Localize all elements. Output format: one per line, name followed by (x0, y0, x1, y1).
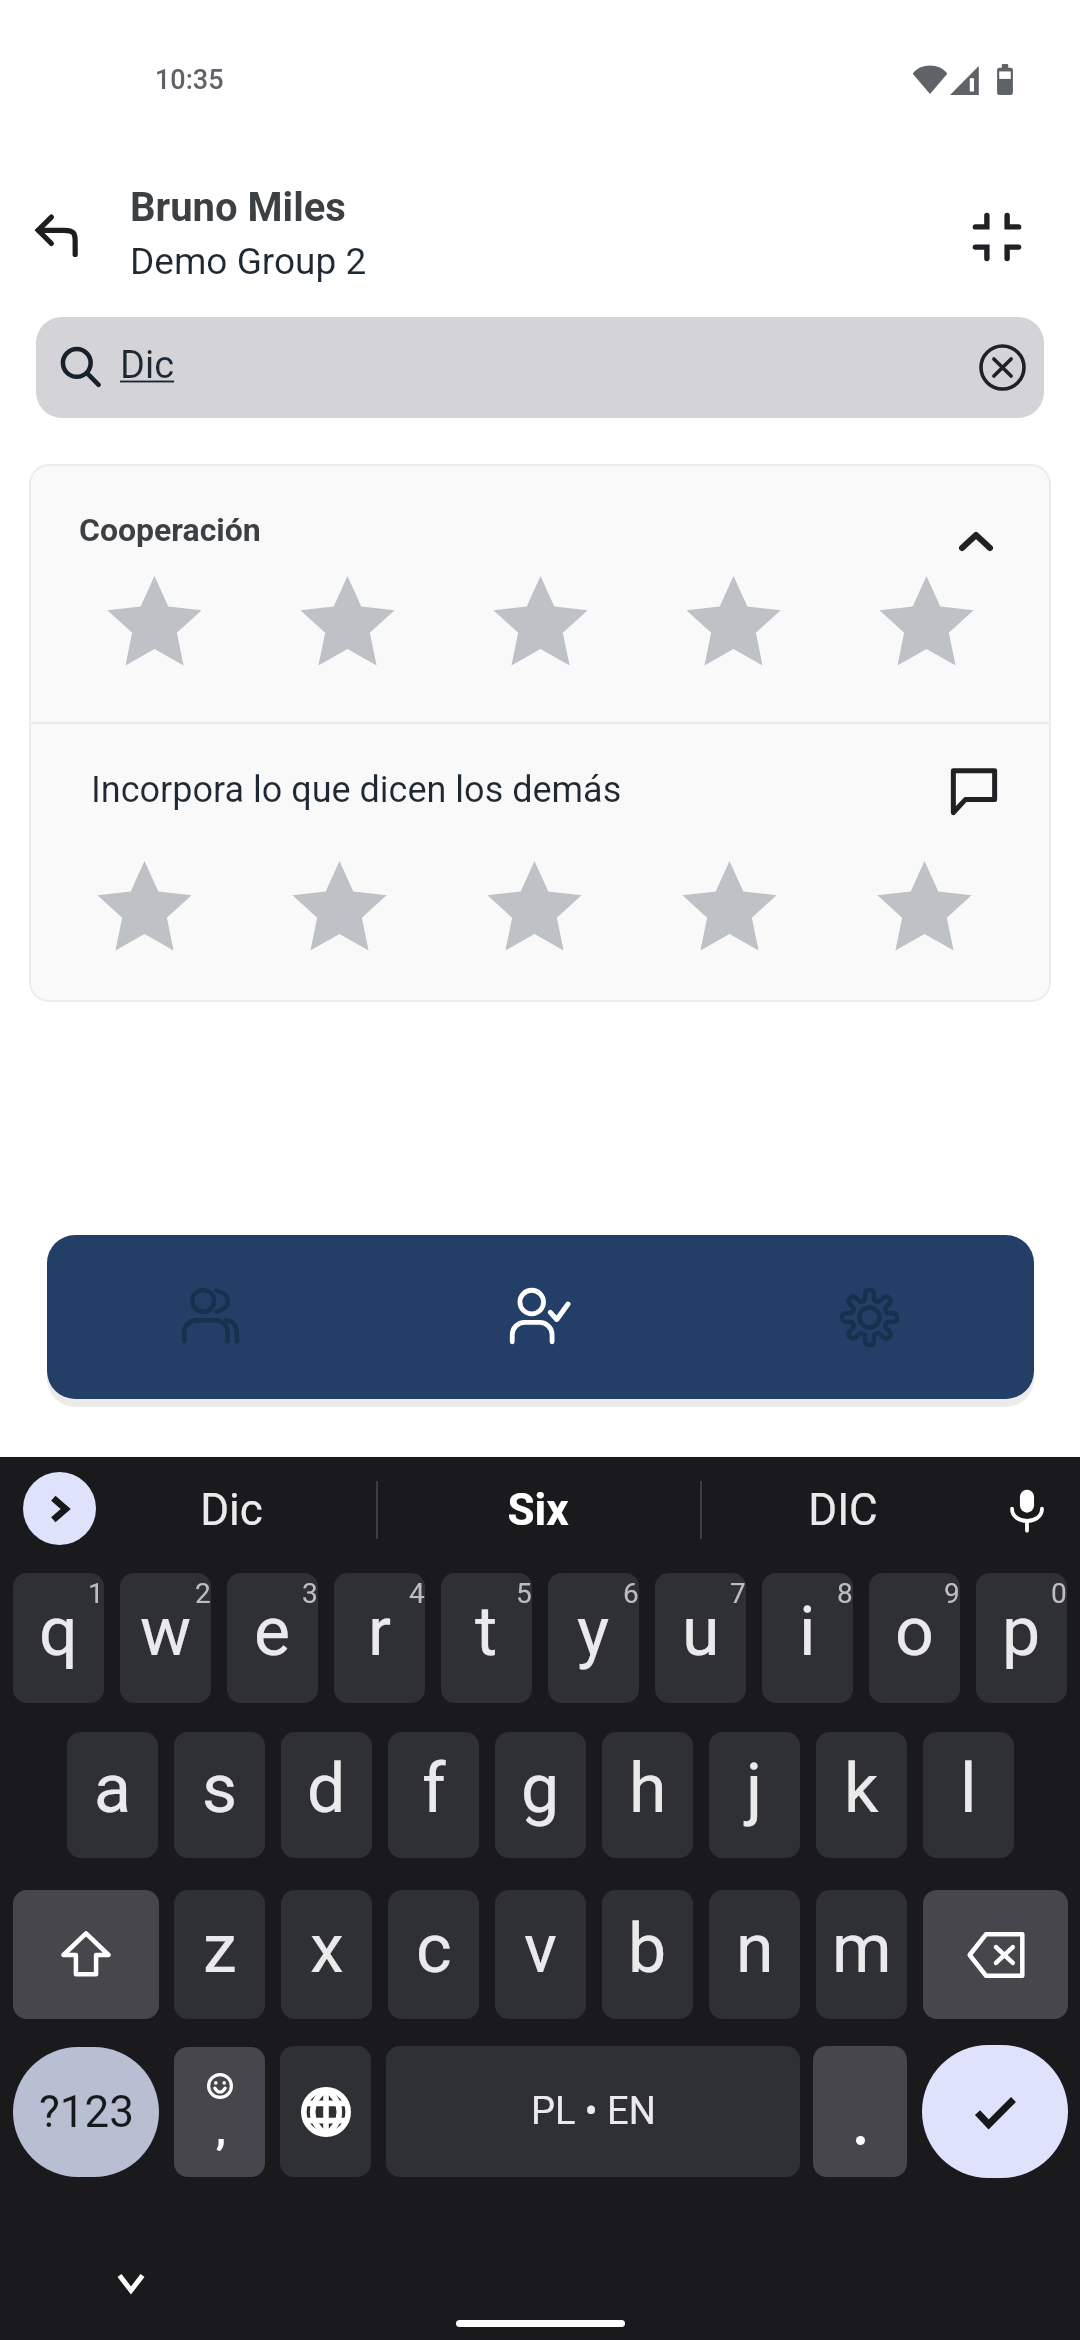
button[interactable]: Rate 5 (830, 569, 1023, 681)
staticText: 0 (1051, 1577, 1067, 1610)
button[interactable]: i (762, 1573, 853, 1703)
button[interactable]: Collapse (952, 192, 1042, 282)
staticText: q (39, 1592, 78, 1672)
staticText: e (254, 1592, 291, 1672)
button[interactable]: Change language (280, 2046, 371, 2177)
staticText: ?123 (39, 2086, 134, 2138)
button[interactable]: r (334, 1573, 425, 1703)
staticText: v (524, 1909, 557, 1989)
button[interactable]: Enter (922, 2045, 1068, 2178)
button[interactable]: Rate 4 (637, 569, 830, 681)
button[interactable]: Dic (104, 1457, 359, 1563)
button[interactable]: n (709, 1890, 800, 2019)
staticText: Bruno Miles (130, 184, 346, 231)
button[interactable]: Evaluate (468, 1246, 608, 1386)
staticText: p (1002, 1592, 1041, 1672)
button[interactable]: Dic (36, 317, 1044, 418)
button[interactable]: z (174, 1890, 265, 2019)
button[interactable]: a (67, 1732, 158, 1858)
button[interactable]: o (869, 1573, 960, 1703)
button[interactable]: p (976, 1573, 1067, 1703)
button[interactable]: l (923, 1732, 1014, 1858)
button[interactable]: m (816, 1890, 907, 2019)
staticText: l (960, 1749, 977, 1829)
staticText: m (832, 1909, 892, 1989)
staticText: Dic (200, 1484, 263, 1536)
button[interactable]: h (602, 1732, 693, 1858)
button[interactable]: Rate 1 (47, 854, 242, 966)
button[interactable]: v (495, 1890, 586, 2019)
staticText: DIC (808, 1484, 878, 1536)
staticText: g (521, 1749, 560, 1829)
staticText: o (895, 1592, 934, 1672)
button[interactable]: s (174, 1732, 265, 1858)
button[interactable]: Backspace (923, 1890, 1068, 2019)
button[interactable]: Comment (938, 754, 1010, 826)
button[interactable]: Settings (799, 1247, 939, 1387)
button[interactable]: Rate 3 (437, 854, 632, 966)
staticText: 5 (516, 1577, 532, 1610)
button[interactable]: DIC (718, 1457, 968, 1563)
button[interactable]: k (816, 1732, 907, 1858)
button[interactable]: Incorpora lo que dicen los demás (29, 724, 1051, 1002)
staticText: s (202, 1749, 238, 1829)
button[interactable]: Rate 4 (632, 854, 827, 966)
staticText: 9 (944, 1577, 960, 1610)
staticText: 4 (409, 1577, 425, 1610)
button[interactable]: Emoji (174, 2047, 265, 2177)
staticText: u (682, 1592, 720, 1672)
button[interactable]: q (13, 1573, 104, 1703)
button[interactable]: Group members (140, 1246, 280, 1386)
staticText: Demo Group 2 (130, 240, 367, 283)
staticText: 10:35 (155, 64, 224, 96)
button[interactable]: c (388, 1890, 479, 2019)
staticText: Six (507, 1484, 569, 1536)
staticText: f (422, 1749, 446, 1829)
button[interactable]: w (120, 1573, 211, 1703)
button[interactable]: j (709, 1732, 800, 1858)
staticText: , (216, 2107, 226, 2154)
button[interactable]: b (602, 1890, 693, 2019)
button[interactable]: d (281, 1732, 372, 1858)
staticText: y (577, 1592, 610, 1672)
staticText: 1 (88, 1577, 104, 1610)
staticText: 2 (195, 1577, 211, 1610)
button[interactable]: Rate 3 (444, 569, 637, 681)
button[interactable]: f (388, 1732, 479, 1858)
button[interactable]: Shift (13, 1890, 159, 2019)
staticText: 6 (623, 1577, 639, 1610)
button[interactable]: Voice input (990, 1473, 1064, 1547)
staticText: 3 (302, 1577, 318, 1610)
staticText: t (475, 1592, 498, 1672)
button[interactable]: y (548, 1573, 639, 1703)
button[interactable]: g (495, 1732, 586, 1858)
button[interactable]: Expand toolbar (23, 1472, 96, 1545)
button[interactable]: t (441, 1573, 532, 1703)
staticText: x (310, 1909, 344, 1989)
button[interactable]: Six (410, 1457, 665, 1563)
button[interactable]: u (655, 1573, 746, 1703)
button[interactable]: e (227, 1573, 318, 1703)
button[interactable]: Back (11, 190, 101, 280)
button[interactable]: ?123 (13, 2047, 159, 2177)
staticText: 7 (730, 1577, 746, 1610)
staticText: Cooperación (79, 511, 261, 549)
staticText: w (140, 1592, 192, 1672)
button[interactable]: Period (813, 2046, 907, 2177)
staticText: k (844, 1749, 879, 1829)
staticText: i (799, 1592, 816, 1672)
button[interactable]: Rate 5 (827, 854, 1022, 966)
button[interactable]: Cooperación (29, 464, 1051, 722)
button[interactable]: Rate 2 (251, 569, 444, 681)
button[interactable]: PL • EN (386, 2046, 800, 2177)
button[interactable]: x (281, 1890, 372, 2019)
staticText: h (629, 1749, 667, 1829)
button[interactable]: Collapse section (936, 501, 1016, 581)
staticText: PL • EN (531, 2089, 656, 2134)
staticText: a (94, 1749, 131, 1829)
button[interactable]: Clear (974, 339, 1030, 395)
staticText: z (203, 1909, 237, 1989)
button[interactable]: Hide keyboard (101, 2253, 161, 2313)
button[interactable]: Rate 2 (242, 854, 437, 966)
button[interactable]: Rate 1 (58, 569, 251, 681)
